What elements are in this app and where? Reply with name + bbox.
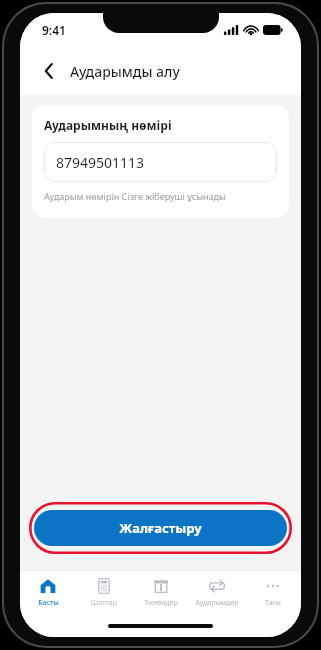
- staticText: Шоттар: [91, 598, 117, 608]
- staticText: Аударымды алу: [70, 62, 180, 81]
- staticText: Төлемдер: [144, 598, 178, 608]
- button[interactable]: Back: [36, 58, 62, 84]
- staticText: Тағы: [265, 598, 281, 608]
- staticText: Аударымдар: [195, 598, 239, 608]
- staticText: Басты: [38, 598, 59, 608]
- button[interactable]: Төлемдер: [133, 571, 189, 615]
- button[interactable]: 87949501113: [44, 142, 277, 182]
- staticText: Жалғастыру: [119, 519, 202, 537]
- staticText: 9:41: [42, 22, 66, 38]
- button[interactable]: Аударымдар: [189, 571, 245, 615]
- button[interactable]: Басты: [20, 571, 76, 615]
- staticText: Аударымның нөмірі: [44, 117, 172, 133]
- button[interactable]: Шоттар: [76, 571, 132, 615]
- button[interactable]: Тағы: [245, 571, 301, 615]
- button[interactable]: Жалғастыру: [34, 510, 287, 546]
- staticText: 87949501113: [56, 153, 145, 172]
- staticText: Аударым нөмірін Сізге жіберуші ұсынады: [44, 190, 226, 202]
